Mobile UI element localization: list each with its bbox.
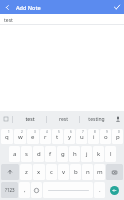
button[interactable]: rest — [47, 111, 79, 127]
button[interactable]: l — [105, 146, 116, 162]
staticText: v — [62, 168, 66, 176]
button[interactable]: p — [112, 129, 123, 144]
button[interactable]: e — [27, 129, 39, 144]
button[interactable]: test — [13, 111, 46, 127]
staticText: d — [37, 150, 41, 158]
button[interactable]: Save note — [110, 0, 124, 14]
staticText: y — [68, 133, 72, 141]
button[interactable]: Voice input — [112, 111, 124, 127]
staticText: i — [93, 133, 95, 141]
staticText: k — [97, 150, 101, 158]
button[interactable]: Back — [0, 0, 14, 14]
button[interactable]: f — [45, 146, 56, 162]
staticText: z — [25, 168, 28, 176]
staticText: e — [31, 133, 35, 141]
button[interactable]: q — [1, 129, 13, 144]
button[interactable]: , — [19, 182, 30, 198]
staticText: t — [56, 133, 59, 141]
button[interactable]: u — [76, 129, 87, 144]
button[interactable]: n — [82, 164, 93, 180]
staticText: 7 — [82, 130, 84, 134]
button[interactable]: g — [57, 146, 68, 162]
staticText: n — [86, 168, 90, 176]
button[interactable]: v — [58, 164, 69, 180]
staticText: q — [5, 133, 9, 141]
staticText: 5 — [58, 130, 60, 134]
button[interactable]: Clipboard — [0, 111, 12, 127]
button[interactable]: x — [33, 164, 45, 180]
staticText: f — [49, 150, 52, 158]
button[interactable]: y — [64, 129, 75, 144]
button[interactable]: Shift — [1, 164, 19, 180]
staticText: , — [24, 186, 26, 194]
staticText: rest — [59, 116, 68, 123]
staticText: w — [18, 133, 23, 141]
staticText: g — [61, 150, 65, 158]
staticText: 0 — [118, 130, 120, 134]
button[interactable]: t — [52, 129, 63, 144]
staticText: o — [104, 133, 108, 141]
staticText: 2 — [21, 130, 23, 134]
staticText: testing — [88, 116, 105, 123]
button[interactable]: testing — [80, 111, 112, 127]
staticText: x — [37, 168, 41, 176]
button[interactable]: ?123 — [1, 182, 18, 198]
button[interactable]: k — [93, 146, 104, 162]
staticText: s — [25, 150, 28, 158]
button[interactable]: o — [100, 129, 111, 144]
button[interactable]: a — [9, 146, 20, 162]
staticText: p — [116, 133, 120, 141]
staticText: Add Note — [16, 4, 41, 11]
staticText: 9 — [106, 130, 108, 134]
button[interactable]: b — [70, 164, 81, 180]
button[interactable]: h — [69, 146, 80, 162]
staticText: r — [44, 133, 47, 141]
button[interactable]: m — [94, 164, 105, 180]
staticText: j — [86, 150, 88, 158]
staticText: 8 — [94, 130, 96, 134]
button[interactable]: Backspace — [106, 164, 123, 180]
staticText: 1 — [8, 130, 10, 134]
staticText: u — [80, 133, 84, 141]
staticText: ?123 — [5, 187, 15, 193]
button[interactable]: z — [20, 164, 32, 180]
staticText: 4 — [46, 130, 48, 134]
staticText: c — [50, 168, 53, 176]
staticText: m — [97, 168, 103, 176]
button[interactable]: w — [14, 129, 26, 144]
staticText: . — [99, 186, 101, 194]
button[interactable]: Enter — [106, 182, 123, 198]
button[interactable]: j — [81, 146, 92, 162]
staticText: test — [4, 17, 13, 24]
staticText: b — [74, 168, 78, 176]
staticText: 6 — [70, 130, 72, 134]
button[interactable]: d — [33, 146, 44, 162]
button[interactable]: . — [94, 182, 105, 198]
button[interactable]: c — [46, 164, 57, 180]
staticText: 3 — [34, 130, 36, 134]
button[interactable]: Space — [43, 182, 93, 198]
button[interactable]: i — [88, 129, 99, 144]
staticText: h — [73, 150, 77, 158]
staticText: a — [13, 150, 17, 158]
staticText: l — [110, 150, 112, 158]
button[interactable]: s — [21, 146, 32, 162]
button[interactable]: Emoji — [31, 182, 42, 198]
staticText: test — [25, 116, 35, 123]
button[interactable]: r — [40, 129, 51, 144]
